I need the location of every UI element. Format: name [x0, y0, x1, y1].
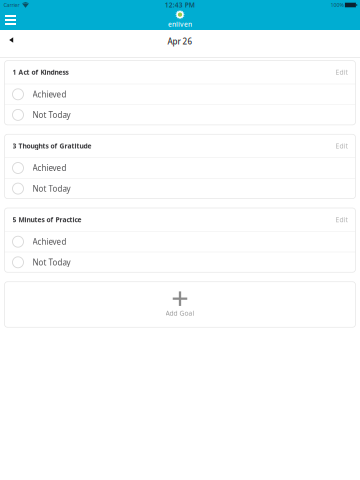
staticText: Achieved — [32, 89, 66, 100]
staticText: 100% — [330, 1, 343, 9]
button[interactable]: Achieved — [4, 158, 355, 178]
staticText: Carrier — [3, 1, 19, 9]
staticText: 3 Thoughts of Gratitude — [12, 141, 91, 150]
button[interactable]: Edit — [335, 211, 355, 228]
button[interactable]: Not Today — [4, 179, 355, 199]
staticText: Achieved — [32, 236, 66, 247]
staticText: Not Today — [32, 183, 70, 194]
button[interactable]: Menu — [0, 12, 21, 28]
button[interactable]: Achieved — [4, 84, 355, 104]
staticText: 1 Act of Kindness — [12, 68, 68, 77]
staticText: enliven — [168, 20, 192, 28]
staticText: Not Today — [32, 257, 70, 268]
staticText: Edit — [335, 215, 347, 224]
button[interactable]: Edit — [335, 64, 355, 81]
button[interactable]: Not Today — [4, 105, 355, 125]
button[interactable]: Edit — [335, 137, 355, 154]
button[interactable]: Add Goal — [4, 282, 355, 327]
staticText: Apr 26 — [167, 36, 192, 47]
staticText: 5 Minutes of Practice — [12, 215, 81, 224]
button[interactable]: Back — [0, 35, 22, 53]
staticText: Add Goal — [165, 309, 194, 318]
button[interactable]: Achieved — [4, 232, 355, 252]
staticText: Not Today — [32, 110, 70, 120]
staticText: 12:43 PM — [165, 1, 195, 9]
button[interactable]: Not Today — [4, 252, 355, 272]
staticText: Achieved — [32, 163, 66, 173]
staticText: Edit — [335, 68, 347, 77]
staticText: Edit — [335, 141, 347, 150]
